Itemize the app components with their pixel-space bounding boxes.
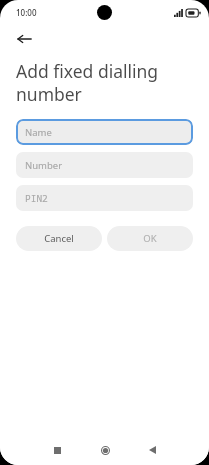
button[interactable]: Number [16, 152, 193, 178]
staticText: Name [25, 126, 52, 139]
button[interactable]: Back [139, 437, 165, 463]
staticText: Add fixed dialling number [16, 59, 175, 106]
button[interactable]: Recent apps [44, 437, 70, 463]
button[interactable]: Cancel [16, 226, 102, 251]
button[interactable]: PIN2 [16, 185, 193, 211]
button[interactable]: Back [10, 25, 38, 53]
button[interactable]: OK [107, 226, 193, 251]
button[interactable]: Home [92, 437, 118, 463]
button[interactable]: Name [16, 119, 193, 145]
staticText: Cancel [44, 232, 74, 245]
staticText: 10:00 [16, 7, 37, 18]
staticText: PIN2 [25, 192, 48, 205]
staticText: Number [25, 159, 63, 172]
staticText: OK [143, 232, 157, 245]
